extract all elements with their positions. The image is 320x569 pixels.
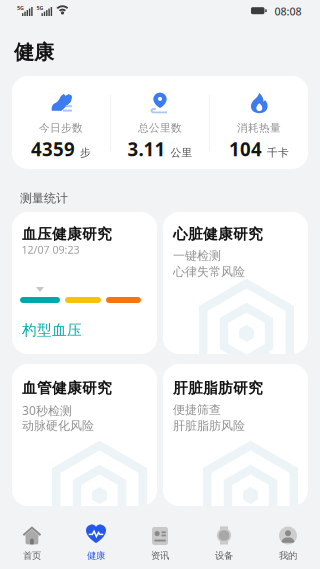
staticText: 我的 (279, 550, 297, 561)
staticText: 一键检测 (173, 248, 221, 263)
staticText: 健康 (87, 550, 105, 561)
staticText: 08:08 (274, 4, 301, 19)
button[interactable]: 肝脏脂肪研究 (163, 364, 308, 506)
staticText: 12/07 09:23 (21, 242, 79, 257)
button[interactable]: 资讯 (128, 506, 192, 569)
staticText: 首页 (23, 550, 41, 561)
staticText: 肝脏脂肪研究 (173, 379, 263, 397)
staticText: 公里 (170, 146, 192, 159)
button[interactable]: 我的 (256, 506, 320, 569)
staticText: 血管健康研究 (22, 379, 112, 397)
staticText: 消耗热量 (237, 121, 281, 135)
staticText: 资讯 (151, 550, 169, 561)
staticText: 3.11 (127, 136, 165, 161)
button[interactable]: 血压健康研究 (12, 212, 157, 354)
staticText: 动脉硬化风险 (22, 418, 94, 433)
staticText: 今日步数 (39, 121, 83, 135)
staticText: 测量统计 (20, 191, 68, 206)
staticText: 30秒检测 (22, 402, 72, 418)
button[interactable]: 血管健康研究 (12, 364, 157, 506)
button[interactable]: 心脏健康研究 (163, 212, 308, 354)
staticText: 千卡 (267, 146, 289, 159)
button[interactable]: 消耗热量 (210, 76, 308, 169)
staticText: 杓型血压 (22, 321, 82, 339)
staticText: 5G (36, 4, 43, 12)
button[interactable]: 设备 (192, 506, 256, 569)
staticText: 心脏健康研究 (173, 225, 263, 243)
staticText: 设备 (215, 550, 233, 561)
staticText: 健康 (14, 40, 54, 65)
staticText: 104 (229, 136, 262, 161)
staticText: 步 (80, 146, 91, 159)
button[interactable]: 健康 (64, 506, 128, 569)
button[interactable]: 今日步数 (12, 76, 110, 169)
staticText: 4359 (31, 136, 75, 161)
staticText: 5G (17, 4, 24, 12)
button[interactable]: 首页 (0, 506, 64, 569)
staticText: 便捷筛查 (173, 402, 221, 417)
staticText: 心律失常风险 (173, 264, 245, 279)
staticText: 总公里数 (138, 121, 182, 135)
staticText: 血压健康研究 (22, 225, 112, 243)
staticText: 肝脏脂肪风险 (173, 418, 245, 433)
button[interactable]: 总公里数 (111, 76, 209, 169)
